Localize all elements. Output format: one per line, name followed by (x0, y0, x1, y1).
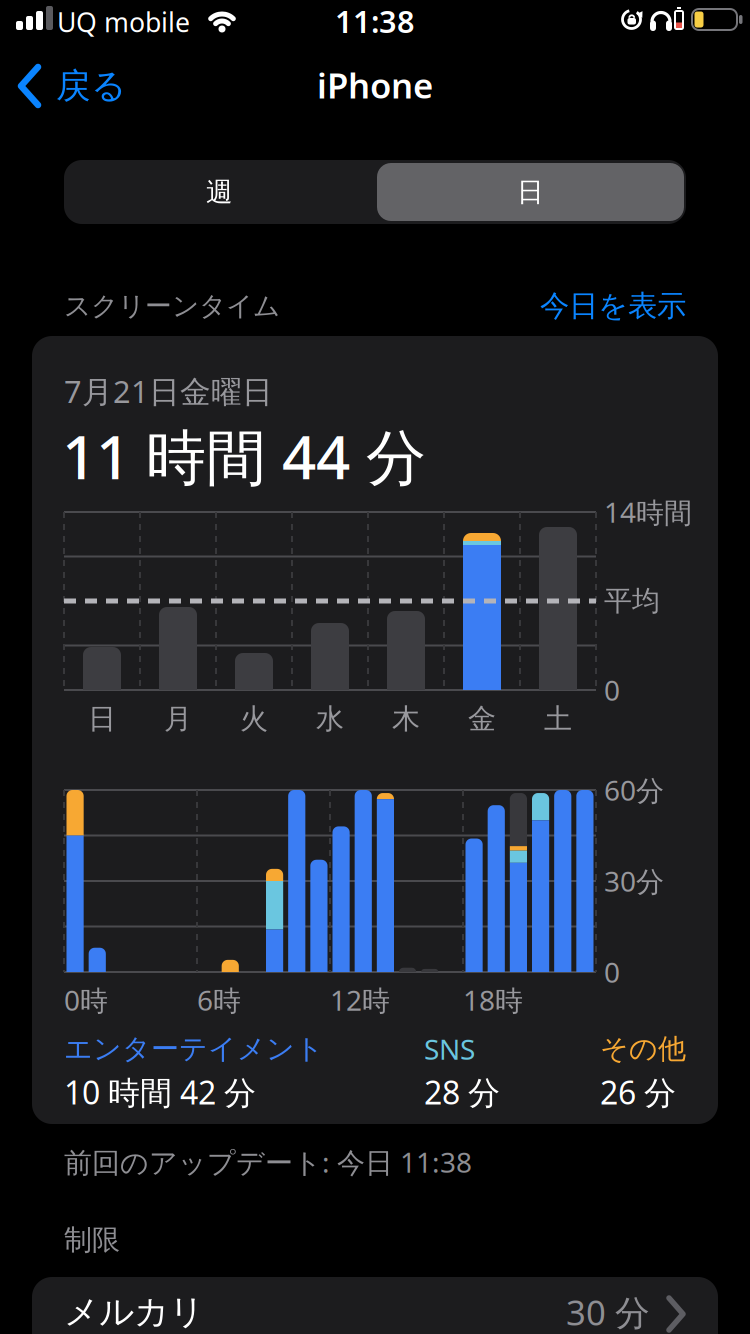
staticText: 金 (468, 702, 496, 736)
staticText: 週 (206, 176, 233, 208)
button[interactable]: 今日を表示 (540, 288, 686, 324)
staticText: 日 (88, 702, 116, 736)
staticText: 18時 (463, 981, 523, 1019)
staticText: 28 分 (424, 1071, 500, 1113)
staticText: 14時間 (604, 493, 692, 531)
staticText: スクリーンタイム (64, 290, 280, 322)
staticText: その他 (600, 1032, 686, 1066)
button[interactable]: 日 (377, 163, 684, 221)
staticText: 土 (544, 702, 572, 736)
staticText: iPhone (317, 62, 433, 108)
staticText: 月 (164, 702, 192, 736)
staticText: 30 分 (566, 1289, 650, 1334)
staticText: 今日を表示 (540, 288, 686, 324)
staticText: メルカリ (64, 1291, 204, 1333)
staticText: 7月21日金曜日 (64, 371, 273, 411)
staticText: 60分 (604, 771, 664, 809)
staticText: 10 時間 42 分 (64, 1071, 256, 1113)
staticText: 11 時間 44 分 (62, 416, 426, 496)
staticText: 平均 (604, 584, 660, 618)
staticText: 戻る (56, 65, 126, 107)
staticText: 木 (392, 702, 420, 736)
staticText: 6時 (197, 981, 241, 1019)
staticText: 火 (240, 702, 268, 736)
staticText: 0 (604, 953, 620, 991)
staticText: 26 分 (600, 1071, 676, 1113)
staticText: 0 (604, 671, 620, 709)
staticText: 30分 (604, 862, 664, 900)
staticText: 12時 (330, 981, 390, 1019)
button[interactable]: 週 (66, 163, 373, 221)
staticText: 制限 (64, 1223, 120, 1257)
staticText: 0時 (64, 981, 108, 1019)
staticText: エンターテイメント (64, 1032, 324, 1066)
staticText: 日 (517, 176, 544, 208)
staticText: 水 (316, 702, 344, 736)
staticText: SNS (424, 1030, 475, 1068)
staticText: 11:38 (335, 1, 415, 41)
staticText: UQ mobile (57, 4, 190, 40)
button[interactable]: 戻る (14, 64, 126, 108)
button[interactable]: メルカリ (32, 1277, 718, 1334)
staticText: 前回のアップデート: 今日 11:38 (64, 1143, 472, 1181)
